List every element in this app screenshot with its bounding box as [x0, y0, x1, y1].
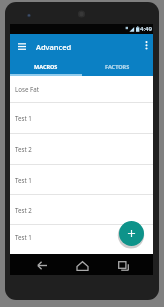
staticText: Advanced — [36, 42, 72, 52]
staticText: Test 1 — [15, 233, 32, 241]
staticText: Test 1 — [15, 176, 32, 184]
button[interactable] — [14, 38, 30, 54]
button[interactable]: Test 2 — [10, 195, 153, 224]
button[interactable] — [74, 258, 90, 273]
button[interactable]: Lose Fat — [10, 76, 153, 102]
staticText: Lose Fat — [15, 85, 39, 93]
staticText: FACTORS — [105, 63, 130, 70]
button[interactable]: FACTORS — [81, 56, 153, 76]
button[interactable] — [141, 39, 152, 52]
staticText: 4:49 — [140, 25, 152, 33]
button[interactable] — [115, 258, 131, 273]
button[interactable]: Test 2 — [10, 134, 153, 164]
staticText: Test 2 — [15, 145, 32, 153]
staticText: MACROS — [34, 63, 58, 70]
button[interactable]: Test 1 — [10, 225, 153, 254]
staticText: Test 2 — [15, 206, 32, 214]
staticText: Test 1 — [15, 114, 32, 122]
button[interactable]: Test 1 — [10, 165, 153, 194]
button[interactable]: MACROS — [10, 56, 81, 76]
button[interactable]: Test 1 — [10, 103, 153, 133]
button[interactable] — [119, 221, 144, 246]
button[interactable] — [34, 258, 50, 273]
